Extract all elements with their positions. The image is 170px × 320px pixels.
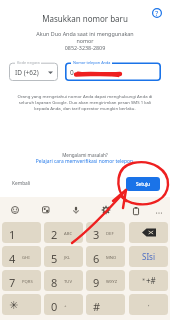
staticText: ✳ [9, 299, 19, 312]
staticText: Orang yang mengetahui nomor Anda dapat m… [11, 93, 159, 111]
staticText: Akun Duo Anda saat ini menggunakan nomor… [16, 30, 154, 51]
button[interactable]: SIsi [129, 246, 168, 267]
staticText: Masukkan nomor baru [0, 13, 170, 24]
staticText: 7 [9, 275, 16, 290]
staticText: ABC [64, 231, 73, 237]
staticText: # [93, 299, 101, 314]
button[interactable]: 5 [44, 246, 83, 267]
staticText: ✳ [142, 277, 146, 282]
staticText: GHI [22, 255, 30, 261]
button[interactable]: 3 [86, 222, 125, 243]
button[interactable]: 2 [44, 222, 83, 243]
button[interactable]: Pelajari cara memverifikasi nomor telepo… [0, 158, 170, 165]
button[interactable]: 9 [86, 270, 125, 291]
button[interactable]: Settings [100, 204, 111, 215]
staticText: 4 [9, 251, 16, 266]
staticText: ? [155, 8, 159, 18]
button[interactable]: ✳ [2, 294, 41, 315]
staticText: ID (+62) [15, 68, 39, 77]
staticText: 2 [51, 227, 58, 242]
staticText: +# [146, 275, 156, 286]
button[interactable]: 4 [2, 246, 41, 267]
staticText: MNO [106, 255, 117, 261]
staticText: DEF [106, 231, 114, 237]
staticText: Setuju [136, 181, 150, 187]
button[interactable]: Help [150, 6, 164, 20]
staticText: Kembali [12, 180, 31, 187]
button[interactable]: 8 [44, 270, 83, 291]
staticText: , [148, 300, 150, 308]
staticText: 0 [70, 68, 74, 77]
button[interactable]: 1 [2, 222, 41, 243]
staticText: 9 [93, 275, 100, 290]
staticText: Mengalami masalah? [0, 152, 170, 158]
button[interactable]: 7 [2, 270, 41, 291]
button[interactable]: , [129, 294, 168, 315]
button[interactable]: ✳ [129, 270, 168, 291]
staticText: TUV [64, 279, 72, 285]
staticText: WXYZ [106, 279, 118, 285]
staticText: + [64, 303, 67, 309]
button[interactable]: 0 [44, 294, 83, 315]
button[interactable]: Clipboard [130, 205, 141, 216]
staticText: 8 [51, 275, 58, 290]
staticText: 3 [93, 227, 100, 242]
button[interactable]: Kembali [6, 177, 37, 190]
staticText: 6 [93, 251, 100, 266]
button[interactable]: # [86, 294, 125, 315]
button[interactable]: Setuju [126, 177, 160, 191]
staticText: 5 [51, 251, 58, 266]
button[interactable]: Stickers [40, 204, 51, 215]
button[interactable]: Backspace [129, 222, 168, 243]
button[interactable]: 6 [86, 246, 125, 267]
staticText: Kode negara [17, 60, 40, 65]
staticText: 1 [9, 227, 16, 242]
staticText: JKL [64, 255, 70, 261]
staticText: PQRS [22, 279, 33, 285]
button[interactable]: Emoji [9, 204, 20, 215]
button[interactable]: More options [153, 207, 164, 218]
staticText: Nomor telepon Anda [73, 60, 111, 65]
staticText: 0 [51, 299, 58, 314]
other: Backspace [142, 228, 156, 237]
staticText: SIsi [142, 251, 155, 262]
button[interactable]: Voice input [70, 204, 81, 215]
